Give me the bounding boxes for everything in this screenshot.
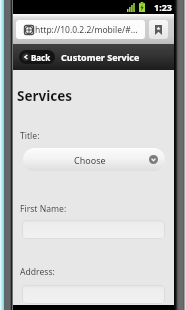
staticText: http://10.0.2.2/mobile/#... [35,24,138,36]
button[interactable]: http://10.0.2.2/mobile/#... [16,20,145,39]
button[interactable]: Choose [23,148,165,171]
staticText: Customer Service [61,51,140,63]
staticText: Back [31,52,51,63]
button[interactable]: Bookmarks [149,20,168,39]
staticText: Services [17,87,73,105]
staticText: First Name: [20,203,67,215]
staticText: Address: [20,266,55,278]
button[interactable]: Back [19,50,55,64]
button[interactable] [22,220,165,239]
staticText: 1:23 [154,1,172,13]
button[interactable] [22,285,165,304]
staticText: Choose [74,154,106,166]
staticText: Title: [20,130,40,142]
